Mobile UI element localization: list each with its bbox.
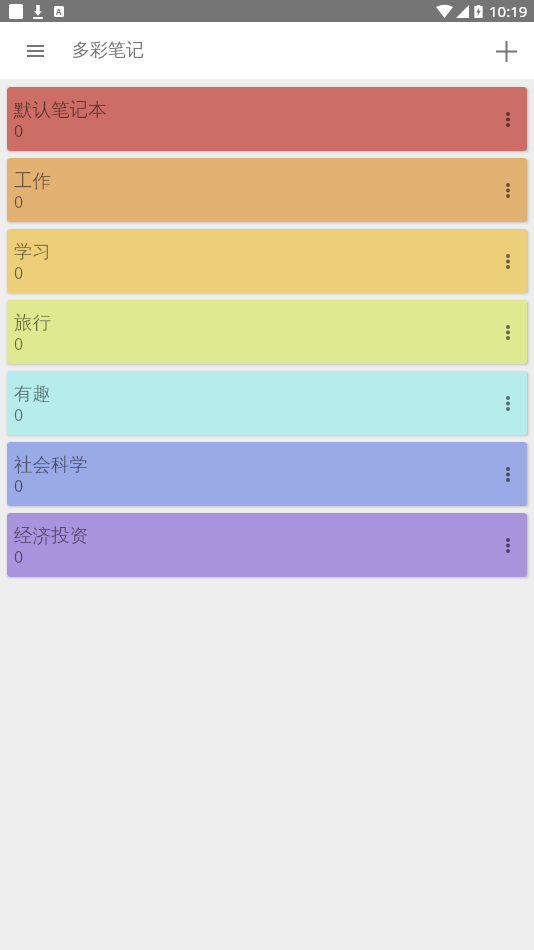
staticText: 0 (14, 262, 24, 284)
button[interactable]: More options (496, 521, 520, 569)
staticText: 0 (14, 404, 24, 426)
staticText: 0 (14, 546, 24, 568)
staticText: 0 (14, 475, 24, 497)
button[interactable]: 工作 (7, 158, 527, 222)
staticText: 0 (14, 191, 24, 213)
button[interactable]: More options (496, 237, 520, 285)
button[interactable]: More options (496, 308, 520, 356)
staticText: 0 (14, 333, 24, 355)
staticText: 10:19 (489, 1, 528, 21)
staticText: 多彩笔记 (72, 39, 144, 62)
button[interactable]: More options (496, 95, 520, 143)
staticText: 工作 (14, 169, 51, 192)
button[interactable]: 学习 (7, 229, 527, 293)
button[interactable]: 社会科学 (7, 442, 527, 506)
button[interactable]: More options (496, 379, 520, 427)
button[interactable]: 有趣 (7, 371, 527, 435)
button[interactable]: More options (496, 450, 520, 498)
button[interactable]: More options (496, 166, 520, 214)
button[interactable]: 默认笔记本 (7, 87, 527, 151)
button[interactable]: Open navigation menu (25, 27, 46, 75)
staticText: 默认笔记本 (14, 98, 107, 121)
staticText: 旅行 (14, 311, 51, 334)
staticText: 学习 (14, 240, 51, 263)
button[interactable]: 旅行 (7, 300, 527, 364)
staticText: 0 (14, 120, 24, 142)
staticText: 社会科学 (14, 453, 88, 476)
staticText: A (56, 6, 62, 17)
staticText: 经济投资 (14, 524, 88, 547)
button[interactable]: Add notebook (494, 27, 518, 75)
staticText: 有趣 (14, 382, 51, 405)
button[interactable]: 经济投资 (7, 513, 527, 577)
